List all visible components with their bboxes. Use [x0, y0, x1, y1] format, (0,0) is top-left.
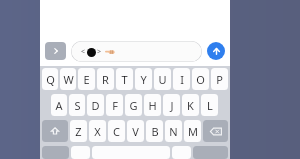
- button[interactable]: X: [89, 120, 106, 142]
- button[interactable]: A: [51, 94, 67, 116]
- button[interactable]: Q: [42, 68, 58, 90]
- button[interactable]: T: [116, 68, 133, 90]
- button[interactable]: P: [211, 68, 228, 90]
- staticText: V: [132, 124, 139, 139]
- staticText: R: [102, 72, 109, 87]
- button[interactable]: V: [127, 120, 144, 142]
- button[interactable]: Z: [70, 120, 87, 142]
- staticText: X: [94, 124, 101, 139]
- staticText: Z: [75, 124, 82, 139]
- staticText: K: [187, 98, 194, 113]
- button[interactable]: N: [165, 120, 182, 142]
- button[interactable]: W: [60, 68, 76, 90]
- staticText: Q: [46, 72, 55, 87]
- staticText: F: [112, 98, 118, 113]
- staticText: >: [97, 47, 102, 57]
- button[interactable]: Shift: [42, 120, 68, 142]
- button[interactable]: O: [192, 68, 209, 90]
- button[interactable]: R: [97, 68, 114, 90]
- staticText: <: [81, 47, 86, 57]
- staticText: D: [91, 98, 100, 113]
- staticText: G: [129, 98, 138, 113]
- staticText: C: [113, 124, 120, 139]
- staticText: H: [148, 98, 157, 113]
- button[interactable]: Backspace: [203, 120, 228, 142]
- staticText: U: [158, 72, 167, 87]
- button[interactable]: D: [87, 94, 104, 116]
- button[interactable]: S: [69, 94, 85, 116]
- button[interactable]: U: [154, 68, 171, 90]
- button[interactable]: Show apps: [45, 42, 66, 60]
- button[interactable]: K: [182, 94, 199, 116]
- button[interactable]: Send: [207, 42, 225, 60]
- button[interactable]: I: [173, 68, 190, 90]
- staticText: M: [188, 124, 198, 139]
- button[interactable]: J: [163, 94, 180, 116]
- button[interactable]: E: [78, 68, 95, 90]
- staticText: J: [170, 98, 174, 113]
- button[interactable]: M: [184, 120, 201, 142]
- staticText: L: [207, 98, 213, 113]
- button[interactable]: B: [146, 120, 163, 142]
- staticText: N: [169, 124, 178, 139]
- button[interactable]: Y: [135, 68, 152, 90]
- staticText: W: [63, 72, 74, 87]
- button[interactable]: F: [106, 94, 123, 116]
- button[interactable]: <: [71, 41, 202, 62]
- button[interactable]: Return: [193, 146, 228, 159]
- staticText: Y: [140, 72, 147, 87]
- button[interactable]: C: [108, 120, 125, 142]
- button[interactable]: Microphone: [172, 146, 191, 159]
- staticText: O: [196, 72, 205, 87]
- button[interactable]: L: [201, 94, 218, 116]
- button[interactable]: Emoji: [71, 146, 90, 159]
- button[interactable]: Numbers: [42, 146, 69, 159]
- button[interactable]: H: [144, 94, 161, 116]
- button[interactable]: Space: [92, 146, 170, 159]
- button[interactable]: G: [125, 94, 142, 116]
- staticText: I: [180, 72, 184, 87]
- staticText: A: [55, 98, 63, 113]
- staticText: B: [151, 124, 159, 139]
- staticText: P: [216, 72, 223, 87]
- staticText: S: [74, 98, 81, 113]
- staticText: T: [121, 72, 128, 87]
- staticText: E: [83, 72, 90, 87]
